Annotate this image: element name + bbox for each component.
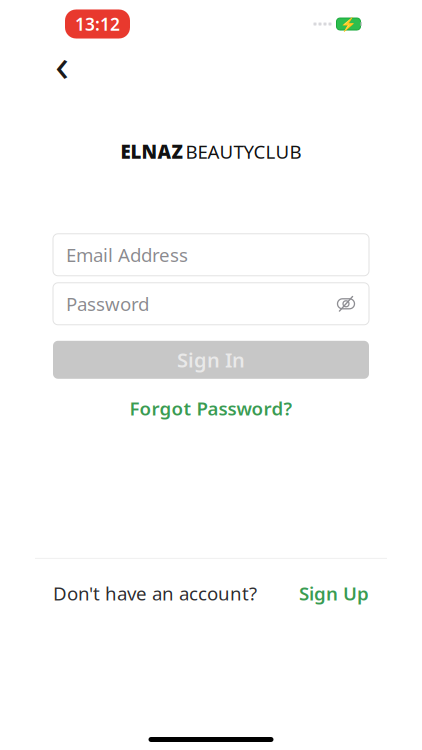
staticText: Don't have an account?	[53, 581, 257, 606]
staticText: BEAUTYCLUB	[185, 139, 301, 164]
button[interactable]: Back	[40, 42, 84, 86]
staticText: ⚡	[340, 16, 357, 32]
button[interactable]: Forgot Password?	[119, 390, 302, 427]
staticText: Forgot Password?	[129, 396, 292, 421]
staticText: Password	[66, 291, 149, 316]
staticText: ‹	[55, 34, 69, 94]
button[interactable]: Show password	[331, 289, 361, 319]
staticText: ELNAZ	[120, 139, 182, 164]
button[interactable]: Email Address	[53, 234, 369, 276]
button[interactable]: Sign Up	[299, 581, 369, 606]
staticText: Sign Up	[299, 581, 369, 606]
staticText: Email Address	[66, 242, 188, 267]
button[interactable]: Sign In	[53, 341, 369, 379]
staticText: 13:12	[75, 12, 120, 35]
staticText: Sign In	[177, 346, 245, 373]
